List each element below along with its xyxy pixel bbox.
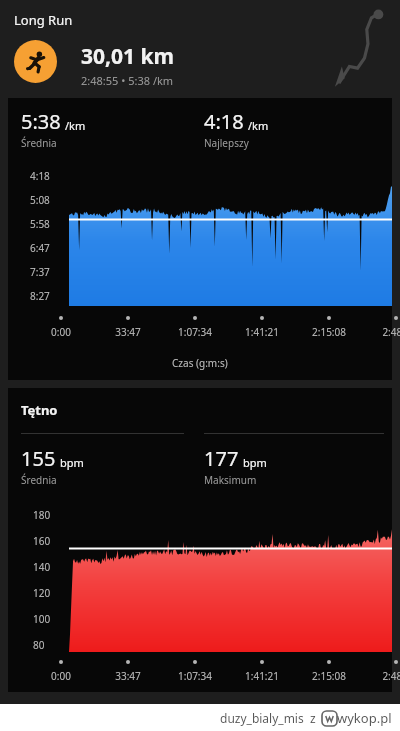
staticText: 1:41:21: [245, 325, 279, 339]
staticText: 33:47: [115, 669, 141, 683]
staticText: 140: [33, 560, 51, 574]
staticText: 2:15:08: [312, 325, 346, 339]
staticText: 2:48:5: [382, 669, 400, 683]
button[interactable]: Tętno: [8, 388, 392, 692]
staticText: 6:47: [30, 241, 50, 255]
staticText: 2:48:5: [382, 325, 400, 339]
staticText: Średnia: [21, 473, 57, 487]
staticText: 33:47: [115, 325, 141, 339]
staticText: 2:48:55 • 5:38 /km: [81, 73, 174, 88]
staticText: 120: [33, 586, 51, 600]
button[interactable]: Route map: [332, 6, 390, 90]
staticText: /km: [248, 118, 269, 133]
staticText: 80: [33, 638, 45, 652]
staticText: 0:00: [51, 669, 71, 683]
staticText: 1:07:34: [178, 325, 212, 339]
staticText: 7:37: [30, 265, 50, 279]
staticText: 1:41:21: [245, 669, 279, 683]
staticText: Tętno: [21, 401, 58, 419]
staticText: 2:15:08: [312, 669, 346, 683]
staticText: 5:38: [21, 108, 61, 135]
staticText: 4:18: [204, 108, 244, 135]
staticText: 180: [33, 508, 51, 522]
staticText: 177: [204, 445, 239, 472]
staticText: bpm: [243, 455, 267, 470]
staticText: 4:18: [30, 169, 50, 183]
staticText: Long Run: [14, 11, 73, 29]
staticText: 5:08: [30, 193, 50, 207]
staticText: 100: [33, 612, 51, 626]
staticText: wykop.pl: [337, 709, 392, 727]
button[interactable]: Long Run: [0, 0, 400, 92]
staticText: 160: [33, 534, 51, 548]
staticText: /km: [65, 118, 86, 133]
staticText: Czas (g:m:s): [172, 356, 228, 370]
staticText: Najlepszy: [204, 136, 249, 150]
staticText: Maksimum: [204, 473, 257, 487]
button[interactable]: 5:38: [8, 98, 392, 380]
staticText: 30,01 km: [81, 42, 174, 71]
staticText: 155: [21, 445, 56, 472]
staticText: 1:07:34: [178, 669, 212, 683]
staticText: 5:58: [30, 217, 50, 231]
staticText: Średnia: [21, 136, 57, 150]
staticText: bpm: [60, 455, 84, 470]
staticText: duzy_bialy_mis z: [220, 710, 316, 726]
staticText: 8:27: [30, 289, 50, 303]
staticText: 0:00: [51, 325, 71, 339]
